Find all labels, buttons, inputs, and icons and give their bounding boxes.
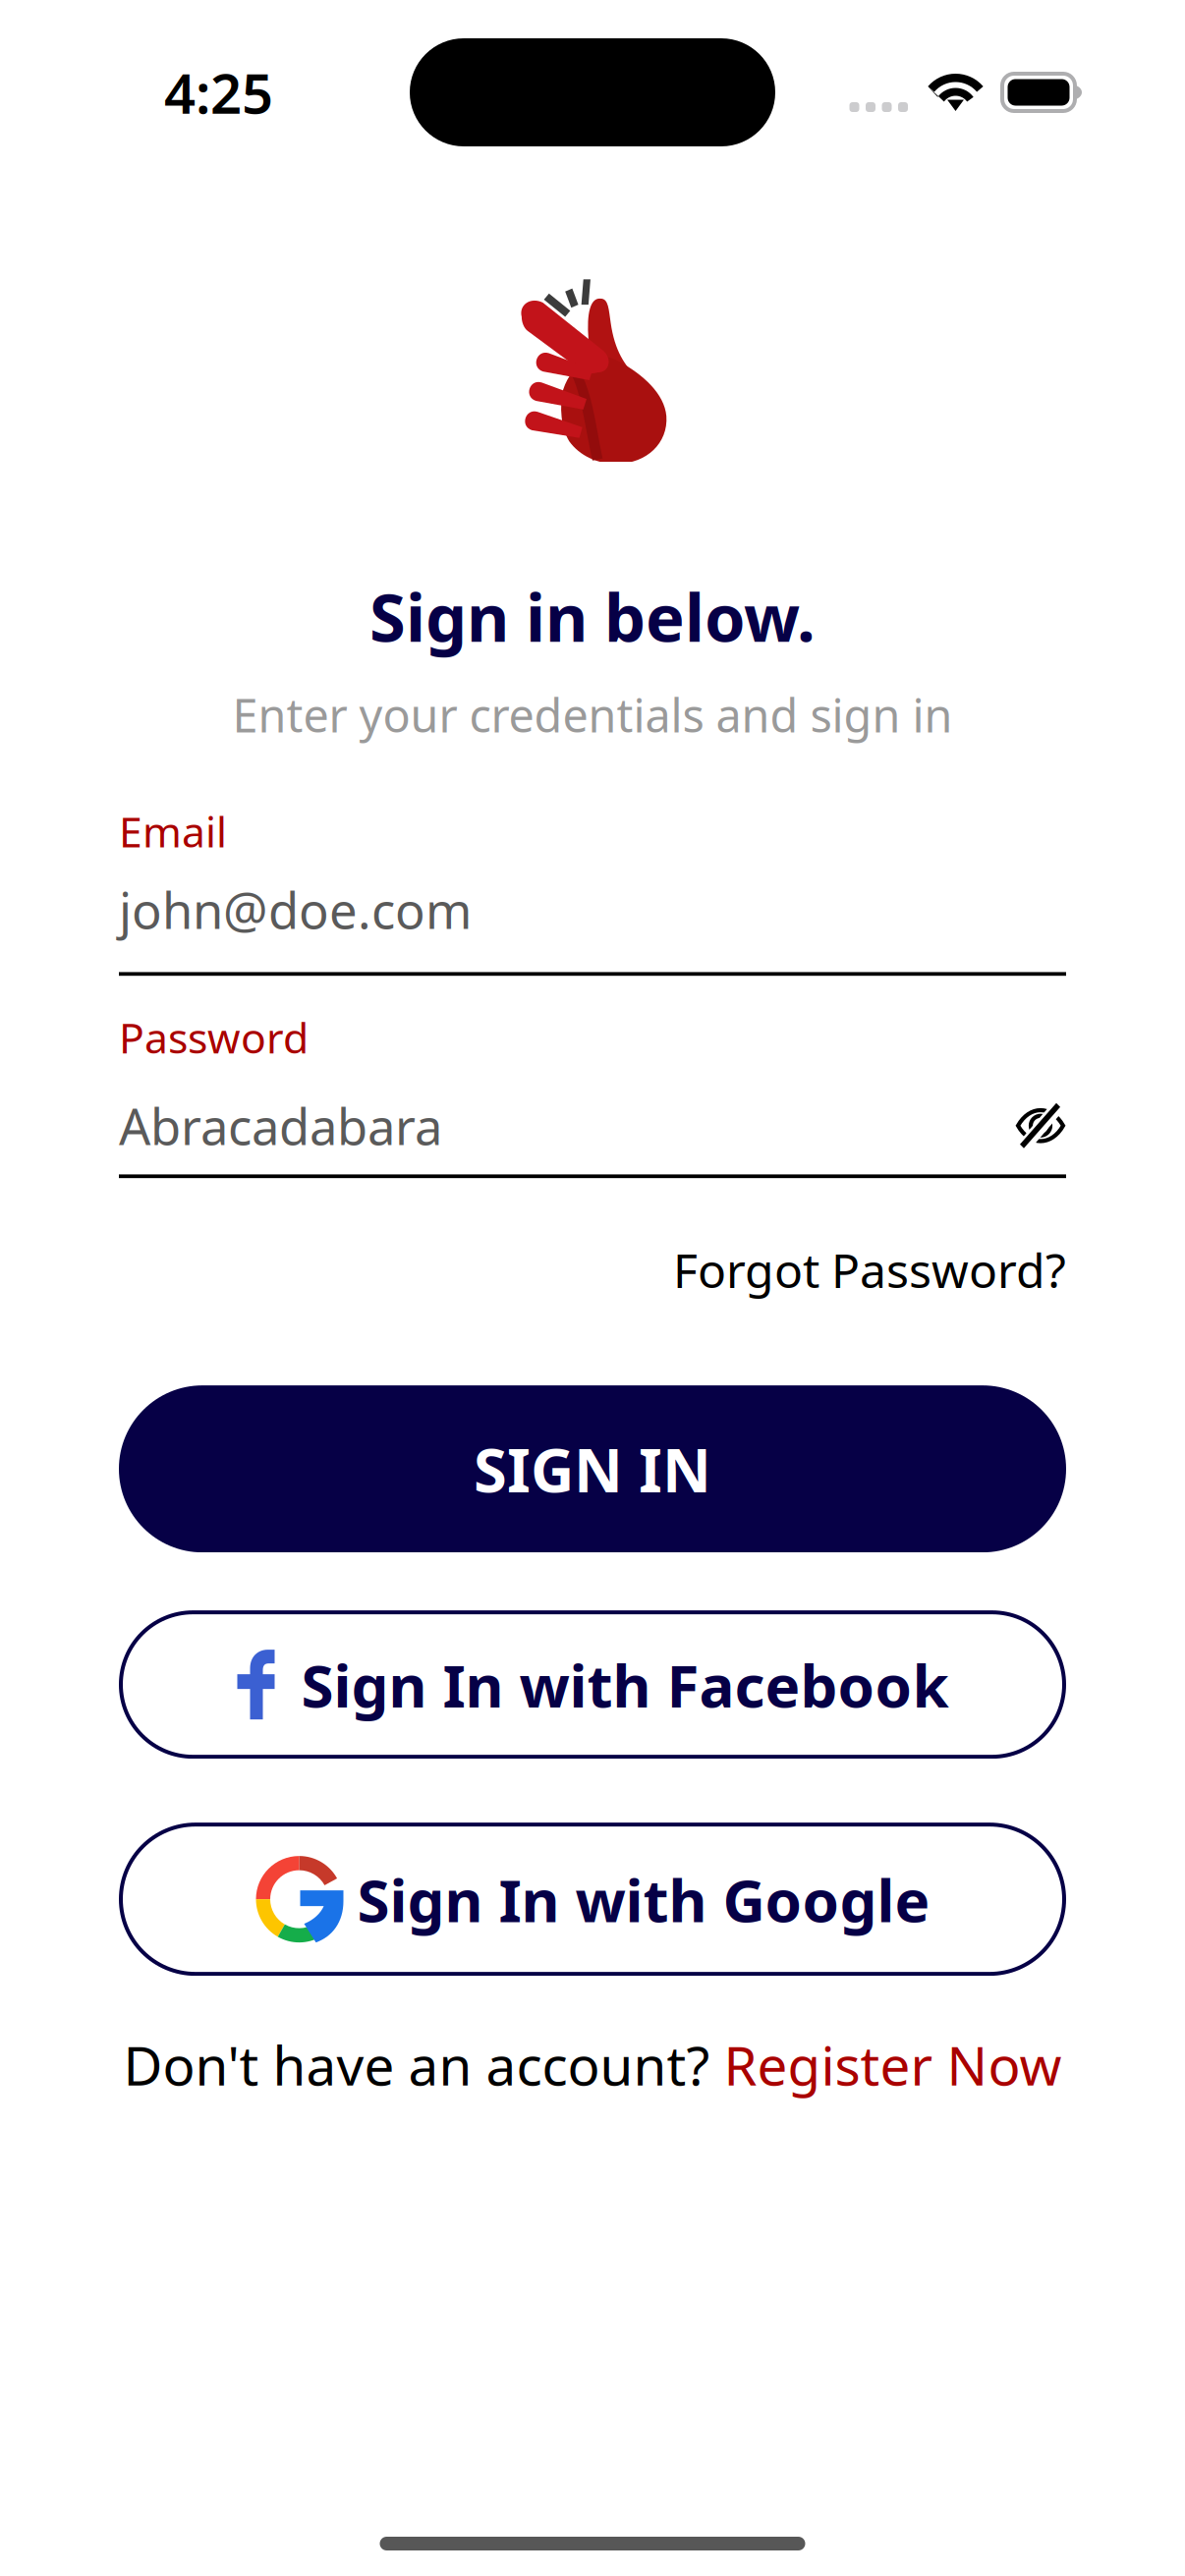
staticText: Sign In with Google (357, 1860, 930, 1938)
staticText: Don't have an account? (123, 2029, 724, 2100)
staticText: SIGN IN (474, 1429, 711, 1509)
button[interactable]: Register Now (724, 2029, 1062, 2100)
staticText: Sign in below. (369, 573, 816, 660)
staticText: 4:25 (164, 56, 273, 129)
staticText: Abracadabara (119, 1093, 442, 1159)
staticText: Sign In with Facebook (301, 1645, 949, 1724)
staticText: Register Now (724, 2029, 1062, 2100)
button[interactable]: Sign In with Google (119, 1823, 1066, 1976)
staticText: Enter your credentials and sign in (232, 684, 953, 745)
staticText: Email (119, 803, 227, 859)
button[interactable]: Forgot Password? (673, 1238, 1066, 1301)
staticText: Password (119, 1009, 309, 1065)
staticText: Forgot Password? (673, 1238, 1066, 1301)
staticText: john@doe.com (119, 877, 472, 943)
button[interactable]: Show password (1015, 1105, 1066, 1146)
button[interactable]: Sign In with Facebook (119, 1610, 1066, 1759)
button[interactable]: SIGN IN (119, 1385, 1066, 1552)
